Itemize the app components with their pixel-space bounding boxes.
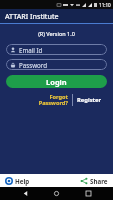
button[interactable]: Back <box>19 187 32 200</box>
button[interactable]: Register <box>76 96 103 104</box>
staticText: Email Id <box>19 46 43 54</box>
staticText: Login <box>46 77 67 87</box>
staticText: Share <box>90 177 108 185</box>
staticText: 11:10 <box>99 2 111 8</box>
staticText: (R) Version 1.0 <box>0 30 113 37</box>
staticText: Forgot Password? <box>38 93 68 107</box>
button[interactable]: Recent apps <box>82 187 95 200</box>
staticText: Help <box>15 177 30 185</box>
button[interactable]: Help <box>4 177 31 185</box>
staticText: Password <box>19 61 47 69</box>
button[interactable]: Email Id <box>6 44 107 55</box>
button[interactable]: Forgot Password? <box>36 93 70 107</box>
staticText: ATTARI Institute <box>5 11 59 21</box>
button[interactable]: Home <box>50 187 63 200</box>
staticText: Register <box>77 96 102 104</box>
button[interactable]: Password <box>6 59 107 70</box>
button[interactable]: Login <box>6 75 107 88</box>
button[interactable]: Share <box>79 177 109 185</box>
